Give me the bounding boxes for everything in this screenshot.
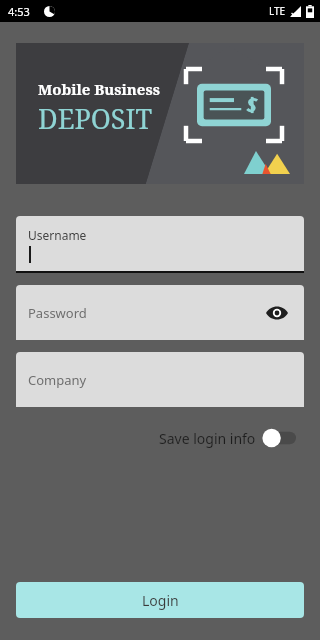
- button[interactable]: Password: [16, 285, 304, 340]
- staticText: Login: [142, 591, 179, 610]
- staticText: Password: [28, 304, 87, 322]
- staticText: DEPOSIT: [38, 100, 152, 137]
- button[interactable]: Company: [16, 352, 304, 407]
- staticText: Username: [28, 227, 87, 243]
- button[interactable]: Show password: [264, 300, 290, 326]
- staticText: Mobile Business: [38, 79, 160, 99]
- button[interactable]: Login: [16, 582, 304, 618]
- button[interactable]: Save login info: [159, 428, 296, 448]
- staticText: Save login info: [159, 429, 256, 448]
- staticText: 4:53: [8, 4, 30, 19]
- button[interactable]: Username: [16, 216, 304, 273]
- staticText: LTE: [269, 4, 286, 18]
- staticText: Company: [28, 371, 87, 389]
